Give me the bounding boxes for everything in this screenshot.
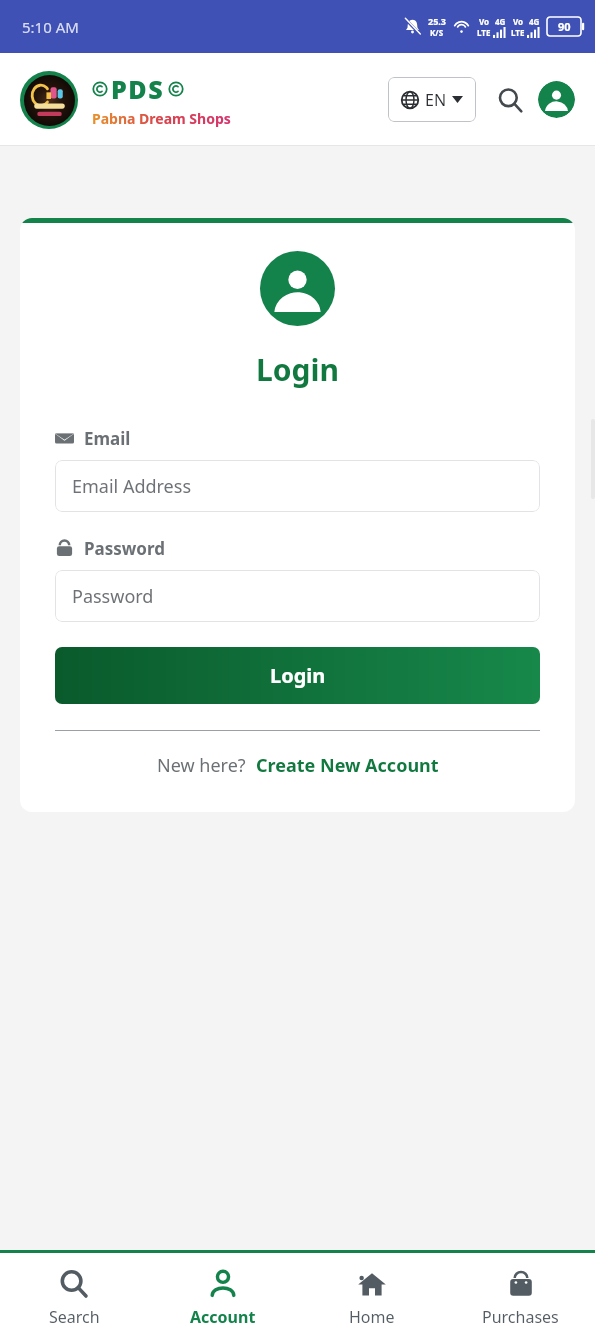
button[interactable]: EN <box>388 77 476 122</box>
staticText: Purchases <box>482 1306 559 1328</box>
button[interactable]: Account <box>538 81 575 118</box>
staticText: 25.3 <box>428 15 446 27</box>
button[interactable]: Password <box>55 570 540 622</box>
staticText: LTE <box>477 27 491 38</box>
staticText: Vo <box>513 16 524 27</box>
button[interactable]: Email Address <box>55 460 540 512</box>
staticText: Search <box>49 1306 100 1328</box>
staticText: K/S <box>430 27 444 38</box>
button[interactable]: Home <box>297 1253 446 1343</box>
staticText: Home <box>349 1306 395 1328</box>
staticText: 4G <box>529 16 540 27</box>
staticText: 4G <box>495 16 506 27</box>
staticText: Account <box>190 1306 256 1328</box>
staticText: Password <box>84 537 165 560</box>
staticText: 5:10 AM <box>22 17 79 37</box>
staticText: Password <box>72 584 154 609</box>
button[interactable]: Search <box>490 80 530 120</box>
staticText: 90 <box>558 19 571 34</box>
staticText: Email <box>84 427 131 450</box>
staticText: LTE <box>511 27 525 38</box>
staticText: New here? <box>157 753 246 778</box>
button[interactable]: Account <box>148 1253 297 1343</box>
staticText: Create New Account <box>256 753 439 778</box>
staticText: EN <box>425 89 447 111</box>
button[interactable]: Create New Account <box>256 753 439 778</box>
staticText: Pabna Dream Shops <box>92 109 231 128</box>
staticText: PDS <box>111 72 165 106</box>
button[interactable]: Login <box>55 647 540 704</box>
staticText: Email Address <box>72 474 192 499</box>
button[interactable]: Purchases <box>446 1253 595 1343</box>
button[interactable]: Pabna Dream Shops logo <box>20 71 78 129</box>
staticText: Login <box>270 662 326 689</box>
button[interactable]: Search <box>0 1253 148 1343</box>
staticText: Vo <box>479 16 490 27</box>
staticText: Login <box>55 349 540 390</box>
